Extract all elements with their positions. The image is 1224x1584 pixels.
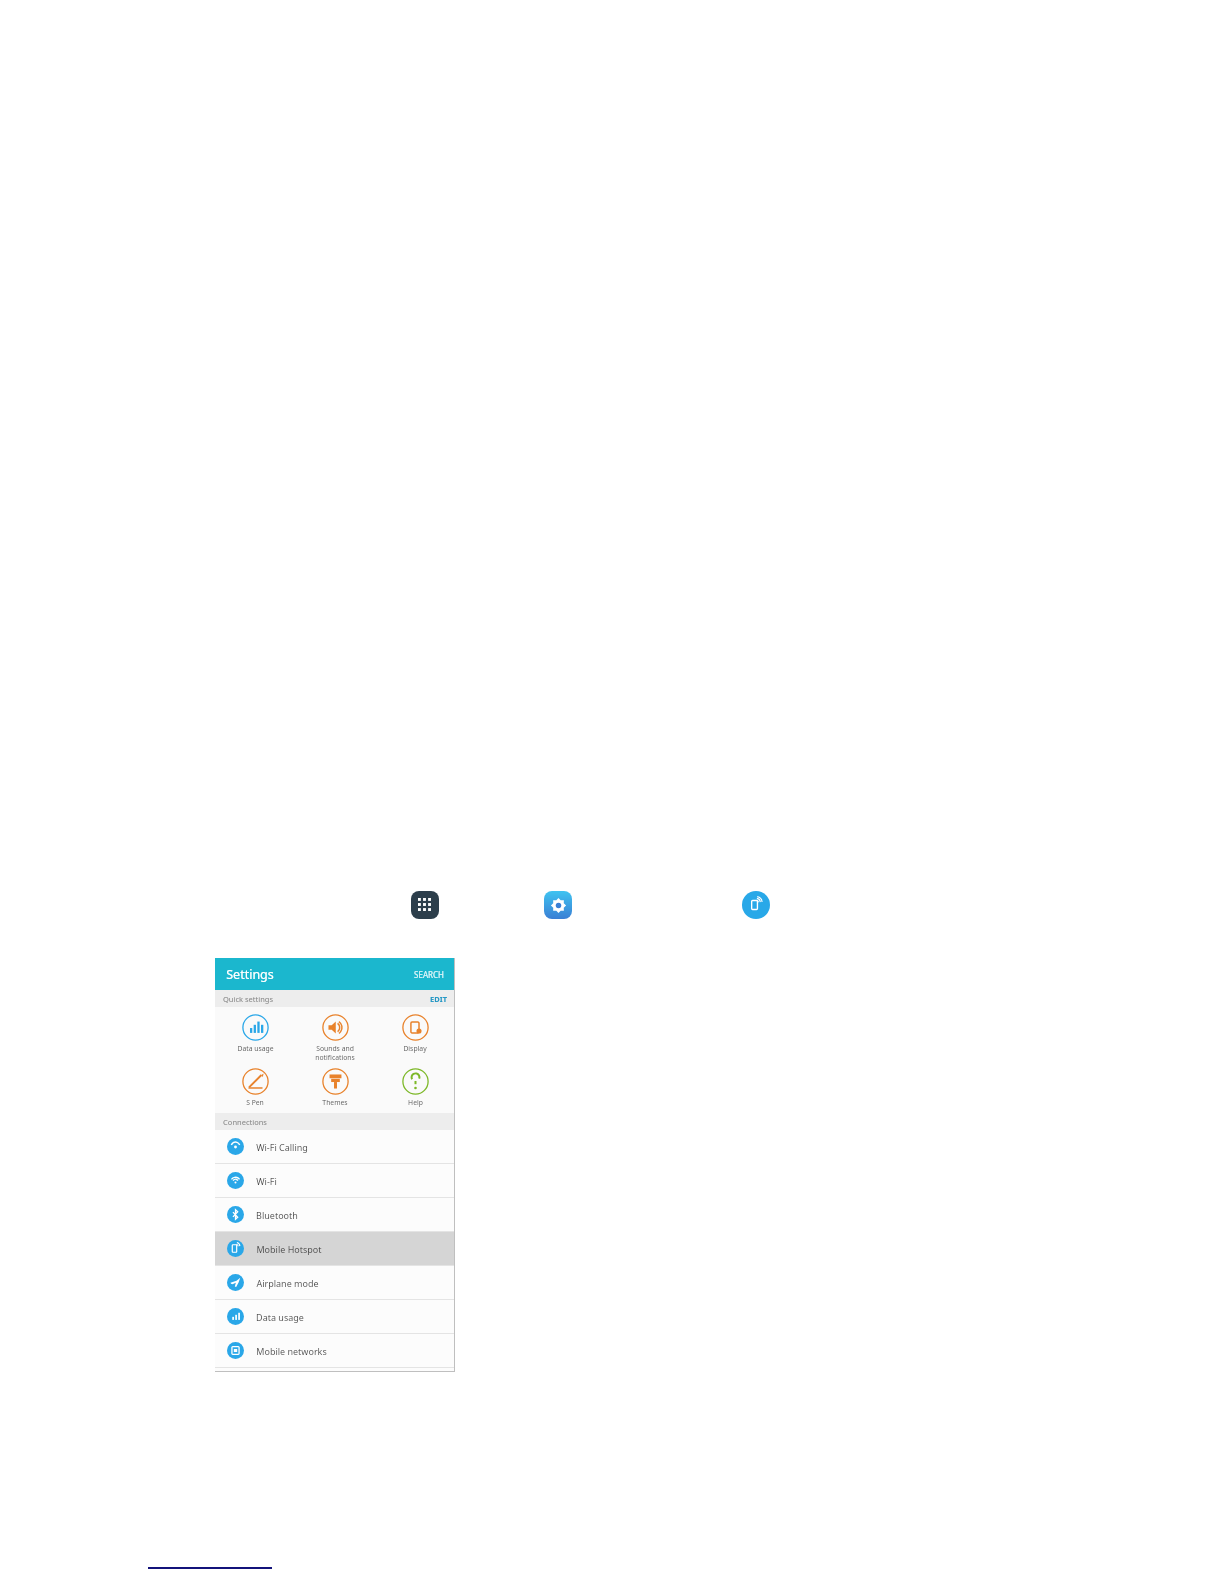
button[interactable]: Mobile Hotspot (742, 891, 770, 919)
staticText: Mobile networks (256, 1345, 327, 1357)
button[interactable]: Apps (411, 891, 439, 919)
staticText: Wi-Fi (256, 1175, 277, 1187)
button[interactable]: Wi-Fi Calling (215, 1130, 455, 1163)
staticText: Themes (322, 1098, 348, 1107)
staticText: SEARCH (414, 969, 444, 980)
staticText: S Pen (246, 1098, 264, 1107)
button[interactable]: EDIT (430, 994, 447, 1004)
button[interactable]: Data usage (215, 1012, 295, 1055)
staticText: Settings (226, 966, 274, 983)
staticText: Sounds and (316, 1044, 354, 1053)
button[interactable]: Sounds and (295, 1012, 375, 1064)
button[interactable]: Settings (215, 958, 455, 990)
button[interactable]: Settings (544, 891, 572, 919)
staticText: Mobile Hotspot (256, 1243, 322, 1255)
staticText: Display (403, 1044, 427, 1053)
staticText: Connections (223, 1117, 267, 1127)
button[interactable]: Help (375, 1066, 455, 1109)
staticText: Wi-Fi Calling (256, 1141, 308, 1153)
staticText: EDIT (430, 994, 447, 1004)
button[interactable]: Mobile Hotspot (215, 1232, 455, 1265)
staticText: Bluetooth (256, 1209, 298, 1221)
button[interactable]: Mobile networks (215, 1334, 455, 1367)
button[interactable]: S Pen (215, 1066, 295, 1109)
button[interactable]: Bluetooth (215, 1198, 455, 1231)
button[interactable]: Data usage (215, 1300, 455, 1333)
button[interactable]: Themes (295, 1066, 375, 1109)
staticText: Help (408, 1098, 423, 1107)
staticText: Data usage (256, 1311, 304, 1323)
button[interactable]: Wi-Fi (215, 1164, 455, 1197)
staticText: Airplane mode (256, 1277, 319, 1289)
button[interactable]: Display (375, 1012, 455, 1055)
staticText: Data usage (237, 1044, 274, 1053)
staticText: notifications (315, 1053, 355, 1062)
button[interactable]: Airplane mode (215, 1266, 455, 1299)
staticText: Quick settings (223, 994, 273, 1004)
